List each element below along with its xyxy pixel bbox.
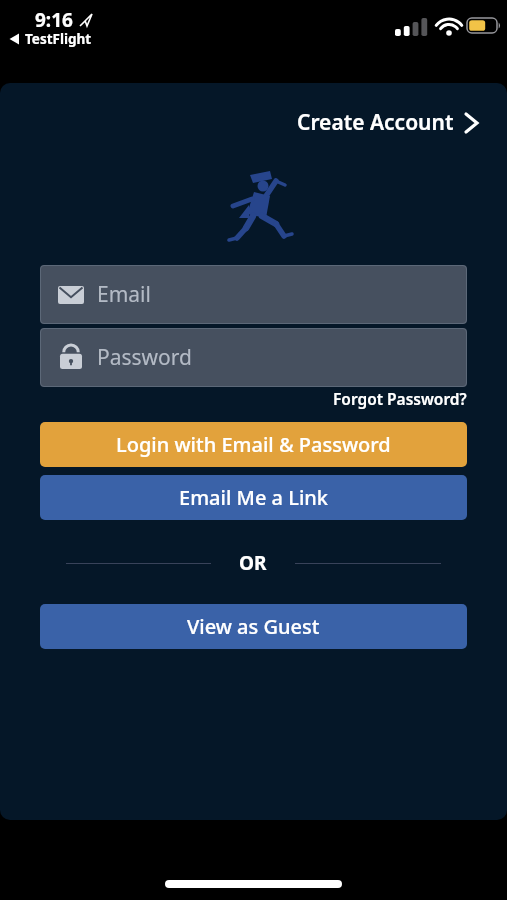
staticText: Email bbox=[97, 280, 151, 309]
staticText: Create Account bbox=[297, 108, 454, 137]
staticText: 9:16 bbox=[35, 7, 73, 33]
staticText: OR bbox=[239, 550, 267, 576]
staticText: TestFlight bbox=[25, 30, 92, 48]
staticText: View as Guest bbox=[187, 613, 320, 640]
staticText: Forgot Password? bbox=[333, 388, 467, 409]
staticText: Email Me a Link bbox=[179, 484, 328, 511]
staticText: Login with Email & Password bbox=[116, 431, 391, 458]
staticText: Password bbox=[97, 343, 192, 372]
